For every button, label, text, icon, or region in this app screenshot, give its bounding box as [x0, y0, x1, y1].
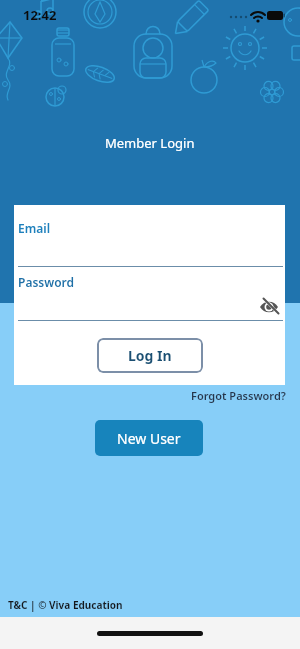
- button[interactable]: Forgot Password?: [191, 388, 286, 403]
- staticText: New User: [117, 429, 181, 448]
- staticText: Log In: [128, 346, 172, 365]
- staticText: T&C | © Viva Education: [8, 598, 123, 612]
- staticText: Password: [18, 274, 75, 290]
- button[interactable]: Email: [18, 220, 51, 236]
- staticText: Email: [18, 220, 51, 236]
- staticText: Forgot Password?: [191, 388, 286, 403]
- button[interactable]: New User: [95, 420, 203, 456]
- button[interactable]: T&C | © Viva Education: [8, 598, 123, 612]
- button[interactable]: Log In: [97, 338, 203, 373]
- button[interactable]: Password: [18, 274, 75, 290]
- button[interactable]: [258, 296, 277, 315]
- staticText: Member Login: [105, 134, 195, 152]
- staticText: 12:42: [23, 6, 57, 24]
